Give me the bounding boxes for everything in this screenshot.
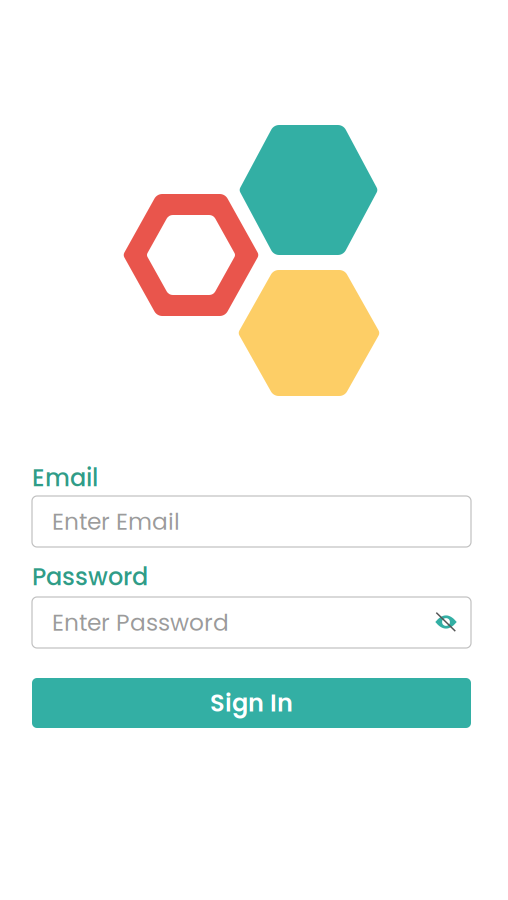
button[interactable]: Sign In <box>32 678 471 728</box>
staticText: Password <box>32 560 148 594</box>
staticText: Enter Password <box>52 606 229 639</box>
button[interactable]: Show password <box>424 600 468 644</box>
button[interactable]: Enter Email <box>32 496 471 547</box>
staticText: Enter Email <box>52 505 180 538</box>
button[interactable]: Enter Password <box>32 597 471 648</box>
staticText: Sign In <box>210 686 293 720</box>
staticText: Email <box>32 461 98 495</box>
